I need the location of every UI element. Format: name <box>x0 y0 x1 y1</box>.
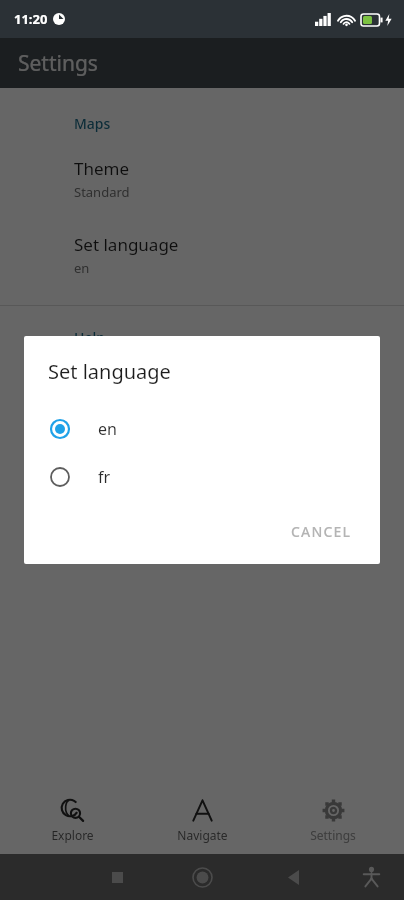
staticText: en <box>98 418 117 440</box>
staticText: Theme <box>74 157 130 180</box>
staticText: Set language <box>48 358 171 385</box>
button[interactable]: Recent apps <box>100 860 134 894</box>
staticText: Help <box>74 328 105 347</box>
button[interactable]: Navigate <box>143 795 261 847</box>
button[interactable]: en <box>24 405 380 453</box>
staticText: en <box>74 259 90 277</box>
button[interactable]: Accessibility <box>354 860 388 894</box>
button[interactable]: Back <box>276 860 310 894</box>
staticText: Maps <box>74 114 111 133</box>
button[interactable]: CANCEL <box>281 513 362 550</box>
button[interactable]: Settings <box>274 795 392 847</box>
staticText: Explore <box>51 827 94 843</box>
staticText: Set language <box>74 233 179 256</box>
staticText: 11:20 <box>14 10 48 28</box>
button[interactable]: fr <box>24 453 380 501</box>
staticText: Standard <box>74 183 130 201</box>
staticText: CANCEL <box>291 522 352 541</box>
staticText: Settings <box>18 49 98 78</box>
button[interactable]: Theme <box>0 155 404 203</box>
staticText: Navigate <box>177 827 228 843</box>
button[interactable]: Set language <box>0 231 404 279</box>
staticText: Settings <box>310 827 356 843</box>
button[interactable]: Home <box>183 858 221 896</box>
button[interactable]: Explore <box>13 795 131 847</box>
staticText: fr <box>98 466 111 488</box>
